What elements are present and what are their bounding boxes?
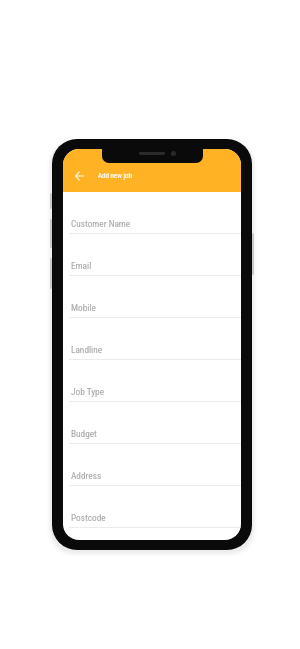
- staticText: Mobile: [71, 302, 96, 313]
- staticText: Budget: [71, 428, 97, 439]
- button[interactable]: Customer Name: [63, 192, 241, 234]
- staticText: Customer Name: [71, 218, 131, 229]
- button[interactable]: Budget: [63, 402, 241, 444]
- staticText: Email: [71, 260, 92, 271]
- staticText: Address: [71, 470, 102, 481]
- staticText: Postcode: [71, 512, 106, 523]
- staticText: Job Type: [71, 386, 105, 397]
- button[interactable]: Job Type: [63, 360, 241, 402]
- staticText: Add new job: [98, 172, 132, 180]
- button[interactable]: Back: [69, 166, 89, 186]
- button[interactable]: Landline: [63, 318, 241, 360]
- button[interactable]: Email: [63, 234, 241, 276]
- button[interactable]: Mobile: [63, 276, 241, 318]
- button[interactable]: Postcode: [63, 486, 241, 528]
- staticText: Landline: [71, 344, 103, 355]
- button[interactable]: Address: [63, 444, 241, 486]
